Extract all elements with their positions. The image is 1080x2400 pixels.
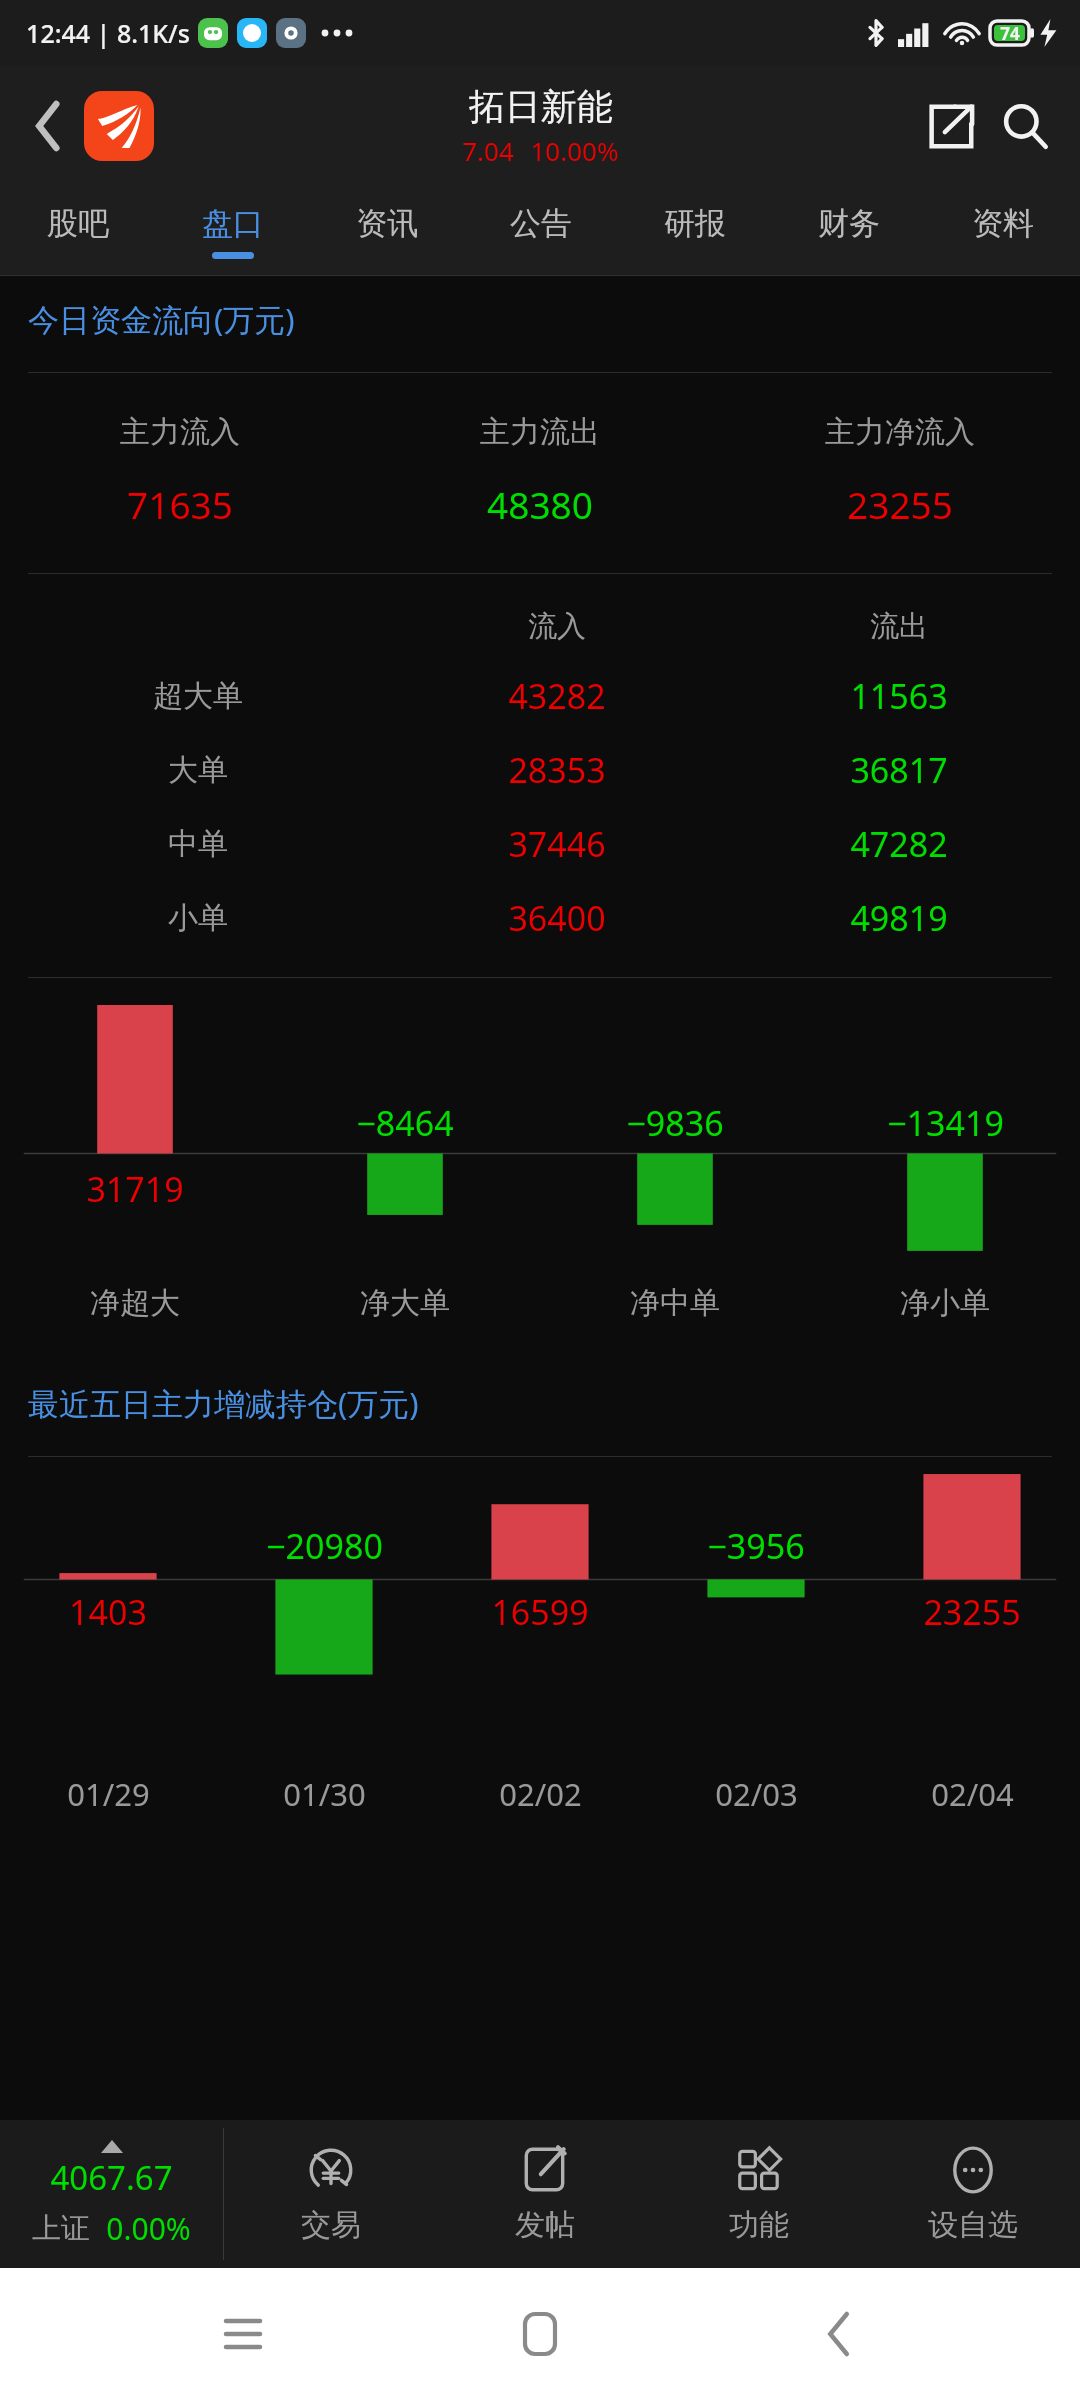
staticText: 净超大: [90, 1284, 180, 1322]
staticText: 23255: [923, 1589, 1021, 1635]
staticText: 流入: [528, 608, 586, 645]
staticText: 功能: [729, 2206, 789, 2244]
button[interactable]: Back: [783, 2279, 893, 2389]
staticText: 上证: [32, 2210, 90, 2247]
button[interactable]: Back: [12, 90, 84, 162]
staticText: 中单: [168, 825, 228, 863]
staticText: 股吧: [47, 204, 109, 243]
button[interactable]: 盘口: [155, 186, 310, 276]
staticText: 4067.67: [50, 2155, 173, 2200]
button[interactable]: 公告: [464, 186, 618, 276]
staticText: 超大单: [153, 677, 243, 715]
staticText: 02/04: [931, 1773, 1014, 1815]
staticText: 37446: [508, 821, 606, 867]
button[interactable]: 交易: [224, 2120, 438, 2268]
staticText: −13419: [887, 1100, 1004, 1146]
staticText: 盘口: [202, 204, 264, 243]
staticText: 公告: [510, 204, 572, 243]
staticText: 研报: [664, 204, 726, 243]
staticText: 02/02: [499, 1773, 582, 1815]
staticText: −8464: [356, 1100, 454, 1146]
button[interactable]: 股吧: [0, 186, 155, 276]
staticText: 48380: [487, 479, 593, 529]
staticText: 43282: [508, 673, 606, 719]
staticText: 大单: [168, 751, 228, 789]
button[interactable]: 4067.67: [0, 2120, 223, 2268]
staticText: 02/03: [715, 1773, 798, 1815]
staticText: 01/29: [67, 1773, 150, 1815]
staticText: 12:44 | 8.1K/s: [26, 16, 190, 50]
staticText: 今日资金流向(万元): [28, 298, 295, 340]
staticText: 净大单: [360, 1284, 450, 1322]
button[interactable]: 功能: [652, 2120, 866, 2268]
staticText: 净小单: [900, 1284, 990, 1322]
staticText: 36400: [508, 895, 606, 941]
staticText: 主力流入: [120, 413, 240, 451]
staticText: 流出: [870, 608, 928, 645]
button[interactable]: 发帖: [438, 2120, 652, 2268]
staticText: 47282: [850, 821, 948, 867]
staticText: −9836: [626, 1100, 724, 1146]
staticText: 0.00%: [106, 2208, 191, 2249]
button[interactable]: Recents: [188, 2279, 298, 2389]
staticText: 主力净流入: [825, 413, 975, 451]
button[interactable]: Search: [988, 89, 1062, 163]
staticText: 财务: [818, 204, 880, 243]
staticText: 设自选: [928, 2206, 1018, 2244]
staticText: 发帖: [515, 2206, 575, 2244]
button[interactable]: 设自选: [866, 2120, 1080, 2268]
staticText: 资讯: [356, 204, 418, 243]
button[interactable]: 财务: [772, 186, 926, 276]
staticText: 11563: [850, 673, 948, 719]
staticText: 1403: [69, 1589, 147, 1635]
staticText: 36817: [850, 747, 948, 793]
staticText: 小单: [168, 899, 228, 937]
staticText: −3956: [707, 1523, 805, 1569]
staticText: 49819: [850, 895, 948, 941]
button[interactable]: 研报: [618, 186, 772, 276]
staticText: 01/30: [283, 1773, 366, 1815]
staticText: 23255: [847, 479, 953, 529]
button[interactable]: Share: [914, 89, 988, 163]
button[interactable]: 资讯: [310, 186, 464, 276]
staticText: 31719: [86, 1166, 184, 1212]
staticText: 74: [1000, 22, 1020, 45]
staticText: 主力流出: [480, 413, 600, 451]
staticText: 净中单: [630, 1284, 720, 1322]
button[interactable]: 资料: [926, 186, 1080, 276]
staticText: 16599: [491, 1589, 589, 1635]
staticText: 最近五日主力增减持仓(万元): [28, 1382, 419, 1424]
staticText: 71635: [127, 479, 233, 529]
button[interactable]: Home: [485, 2279, 595, 2389]
staticText: −20980: [266, 1523, 383, 1569]
button[interactable]: App logo: [84, 91, 154, 161]
staticText: 7.04: [462, 133, 514, 168]
staticText: 资料: [972, 204, 1034, 243]
staticText: 28353: [508, 747, 606, 793]
staticText: 10.00%: [530, 133, 619, 168]
staticText: 拓日新能: [469, 84, 613, 129]
staticText: 交易: [301, 2206, 361, 2244]
